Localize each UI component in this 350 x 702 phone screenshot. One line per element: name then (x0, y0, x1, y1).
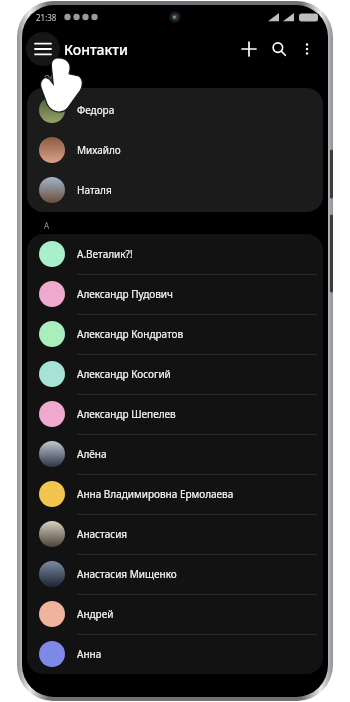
staticText: Алёна (77, 447, 107, 461)
button[interactable]: Михайло (27, 130, 323, 170)
staticText: A.Веталик?! (77, 247, 133, 261)
button[interactable]: Александр Косогий (27, 354, 323, 394)
button[interactable]: Александр Кондратов (27, 314, 323, 354)
button[interactable]: Андрей (27, 594, 323, 634)
button[interactable]: Наталя (27, 170, 323, 210)
button[interactable]: Александр Шепелев (27, 394, 323, 434)
staticText: Андрей (77, 607, 114, 621)
staticText: Наталя (77, 183, 112, 197)
button[interactable]: Search (264, 34, 294, 64)
staticText: А (44, 220, 50, 231)
button[interactable]: Add contact (234, 34, 264, 64)
staticText: Михайло (77, 143, 121, 157)
button[interactable]: Анастасия Мищенко (27, 554, 323, 594)
staticText: Александр Кондратов (77, 327, 184, 341)
button[interactable]: Александр Пудович (27, 274, 323, 314)
staticText: Анастасия (77, 527, 128, 541)
staticText: Александр Пудович (77, 287, 173, 301)
staticText: Анна Владимировна Ермолаева (77, 487, 234, 501)
button[interactable]: More options (294, 36, 320, 62)
staticText: Анна (77, 647, 102, 661)
staticText: 21:38 (36, 12, 57, 23)
staticText: Обране (44, 73, 74, 84)
button[interactable]: Федора (27, 90, 323, 130)
staticText: Контакти (64, 40, 128, 59)
button[interactable]: Анна (27, 634, 323, 674)
button[interactable]: Алёна (27, 434, 323, 474)
button[interactable]: A.Веталик?! (27, 234, 323, 274)
button[interactable]: Menu (26, 32, 60, 66)
staticText: Федора (77, 103, 115, 117)
button[interactable]: Анастасия (27, 514, 323, 554)
staticText: Александр Шепелев (77, 407, 176, 421)
staticText: Александр Косогий (77, 367, 171, 381)
button[interactable]: Анна Владимировна Ермолаева (27, 474, 323, 514)
staticText: Анастасия Мищенко (77, 567, 177, 581)
